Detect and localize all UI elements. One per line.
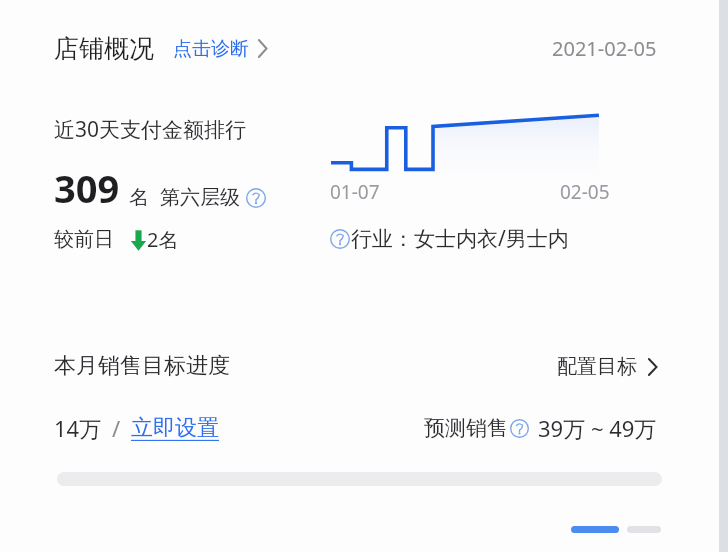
staticText: 近30天支付金额排行	[54, 115, 247, 144]
button[interactable]: Help	[330, 224, 569, 253]
staticText: 点击诊断	[173, 37, 249, 61]
other: Help	[510, 419, 529, 438]
staticText: 较前日	[54, 227, 114, 252]
staticText: 预测销售	[424, 415, 508, 441]
staticText: /	[112, 413, 121, 443]
staticText: 39万 ~ 49万	[538, 413, 657, 443]
other: Help	[330, 229, 350, 249]
other: Help	[246, 188, 266, 208]
button[interactable]: Payment amount trend chart	[331, 108, 603, 174]
staticText: 02-05	[560, 179, 610, 205]
button[interactable]: 立即设置	[131, 414, 219, 442]
button[interactable]: 309	[54, 162, 266, 214]
button[interactable]: 店铺概况	[54, 33, 267, 64]
button[interactable]: 配置目标	[557, 354, 657, 379]
staticText: 309	[54, 162, 120, 214]
staticText: 2021-02-05	[552, 35, 657, 62]
staticText: 14万	[54, 413, 102, 443]
staticText: 配置目标	[557, 354, 637, 379]
staticText: 行业：女士内衣/男士内	[351, 224, 569, 253]
staticText: 第六层级	[160, 185, 240, 210]
staticText: 立即设置	[131, 414, 219, 442]
staticText: 01-07	[330, 179, 380, 205]
button[interactable]: Page 1	[571, 526, 619, 533]
button[interactable]: 预测销售	[424, 413, 657, 443]
button[interactable]: Page 2	[627, 526, 661, 533]
staticText: 名	[129, 185, 149, 210]
staticText: 本月销售目标进度	[54, 352, 230, 380]
staticText: 2名	[147, 226, 179, 253]
staticText: 店铺概况	[54, 33, 154, 64]
